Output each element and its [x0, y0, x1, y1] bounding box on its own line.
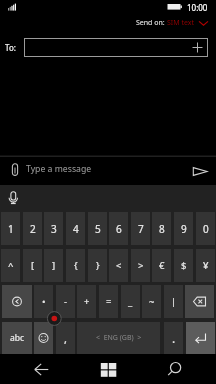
staticText: 10:00	[187, 2, 208, 13]
button[interactable]: 4	[66, 212, 85, 245]
staticText: •	[42, 295, 46, 308]
staticText: [	[31, 259, 35, 272]
button[interactable]: |	[164, 285, 183, 318]
staticText: 9	[181, 222, 187, 236]
staticText: =	[106, 295, 112, 308]
button[interactable]: 1	[1, 212, 20, 245]
button[interactable]: <	[109, 249, 128, 282]
staticText: SIM text	[167, 18, 194, 28]
staticText: 4	[73, 222, 79, 236]
staticText: <	[116, 259, 122, 272]
button[interactable]: ~	[142, 285, 161, 318]
staticText: 5	[95, 222, 101, 236]
button[interactable]	[161, 356, 191, 382]
button[interactable]	[186, 322, 215, 354]
button[interactable]: 7	[131, 212, 150, 245]
staticText: To:	[5, 42, 16, 53]
button[interactable]	[34, 322, 53, 354]
staticText: _	[128, 295, 133, 308]
button[interactable]: 8	[152, 212, 171, 245]
button[interactable]: 6	[109, 212, 128, 245]
button[interactable]	[0, 157, 216, 184]
staticText: >	[138, 259, 144, 272]
staticText: 6	[116, 222, 122, 236]
button[interactable]	[26, 356, 56, 382]
button[interactable]: < ENG (GB) >	[77, 322, 160, 354]
button[interactable]	[24, 38, 208, 57]
staticText: < ENG (GB) >	[96, 333, 142, 343]
button[interactable]	[93, 356, 123, 382]
button[interactable]: ]	[44, 249, 63, 282]
button[interactable]: {	[66, 249, 85, 282]
button[interactable]: •	[34, 285, 53, 318]
button[interactable]: abc	[2, 322, 32, 354]
button[interactable]: 2	[23, 212, 42, 245]
button[interactable]: $	[174, 249, 193, 282]
button[interactable]: _	[121, 285, 140, 318]
button[interactable]: ,	[56, 322, 75, 354]
staticText: +	[84, 295, 90, 308]
button[interactable]: .	[164, 322, 183, 354]
button[interactable]: 9	[174, 212, 193, 245]
staticText: ^	[8, 259, 14, 272]
staticText: Type a message	[26, 163, 92, 175]
button[interactable]: >	[131, 249, 150, 282]
button[interactable]	[185, 285, 214, 318]
button[interactable]: +	[77, 285, 96, 318]
staticText: Send on:	[136, 18, 167, 28]
button[interactable]: =	[99, 285, 118, 318]
staticText: .	[172, 330, 176, 346]
staticText: }	[96, 259, 100, 272]
staticText: $	[181, 259, 187, 272]
staticText: -	[64, 295, 68, 308]
staticText: €	[159, 259, 165, 272]
button[interactable]: ¥	[196, 249, 215, 282]
staticText: 7	[138, 222, 144, 236]
staticText: 1	[8, 222, 14, 236]
button[interactable]: €	[152, 249, 171, 282]
staticText: ,	[64, 331, 67, 346]
staticText: abc	[10, 332, 25, 344]
staticText: ]	[52, 259, 56, 272]
staticText: ~	[149, 295, 155, 308]
staticText: {	[74, 259, 78, 272]
button[interactable]: 3	[44, 212, 63, 245]
button[interactable]: ^	[1, 249, 20, 282]
button[interactable]: [	[23, 249, 42, 282]
button[interactable]: }	[88, 249, 107, 282]
staticText: |	[171, 295, 177, 308]
staticText: 8	[159, 222, 165, 236]
button[interactable]	[2, 285, 32, 318]
staticText: 3	[51, 222, 57, 236]
button[interactable]: 5	[88, 212, 107, 245]
staticText: 2	[30, 222, 36, 236]
staticText: 0	[203, 222, 209, 236]
button[interactable]: -	[56, 285, 75, 318]
staticText: ¥	[203, 259, 209, 272]
button[interactable]: 0	[196, 212, 215, 245]
